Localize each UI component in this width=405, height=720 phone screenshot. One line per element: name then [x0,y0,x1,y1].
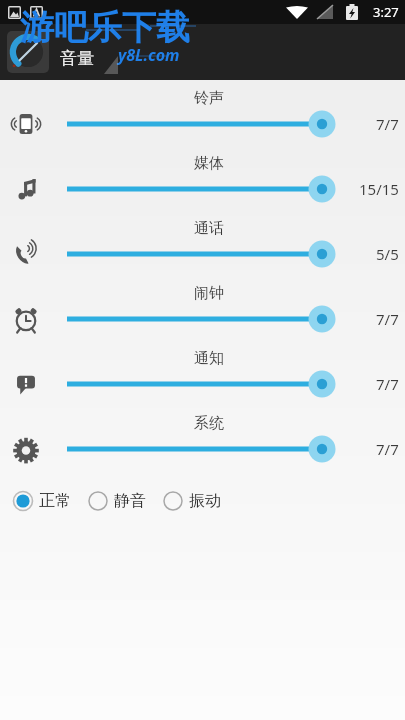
button[interactable]: 通知 [0,349,405,403]
button[interactable]: 媒体 [0,154,405,208]
button[interactable]: 闹钟 [0,284,405,338]
staticText: 闹钟 [194,284,224,303]
button[interactable]: 系统 [0,414,405,468]
staticText: 7/7 [376,114,399,134]
staticText: 媒体 [194,154,224,173]
button[interactable]: 振动 [162,490,221,512]
button[interactable]: 静音 [87,490,146,512]
staticText: 静音 [114,491,146,511]
staticText: 音量 [60,48,94,69]
staticText: 7/7 [376,374,399,394]
staticText: 振动 [189,491,221,511]
button[interactable]: 通话 [0,219,405,273]
staticText: 铃声 [194,89,224,108]
staticText: 系统 [194,414,224,433]
staticText: 15/15 [359,179,399,199]
staticText: 3:27 [373,3,399,21]
staticText: 正常 [39,491,71,511]
staticText: 游吧乐下载 [20,6,190,49]
staticText: 通话 [194,219,224,238]
button[interactable]: 正常 [12,490,71,512]
staticText: 通知 [194,349,224,368]
staticText: y8L.com [118,44,180,66]
button[interactable]: App icon [7,31,49,73]
staticText: 7/7 [376,439,399,459]
button[interactable]: 铃声 [0,89,405,143]
staticText: 5/5 [376,244,399,264]
staticText: 7/7 [376,309,399,329]
